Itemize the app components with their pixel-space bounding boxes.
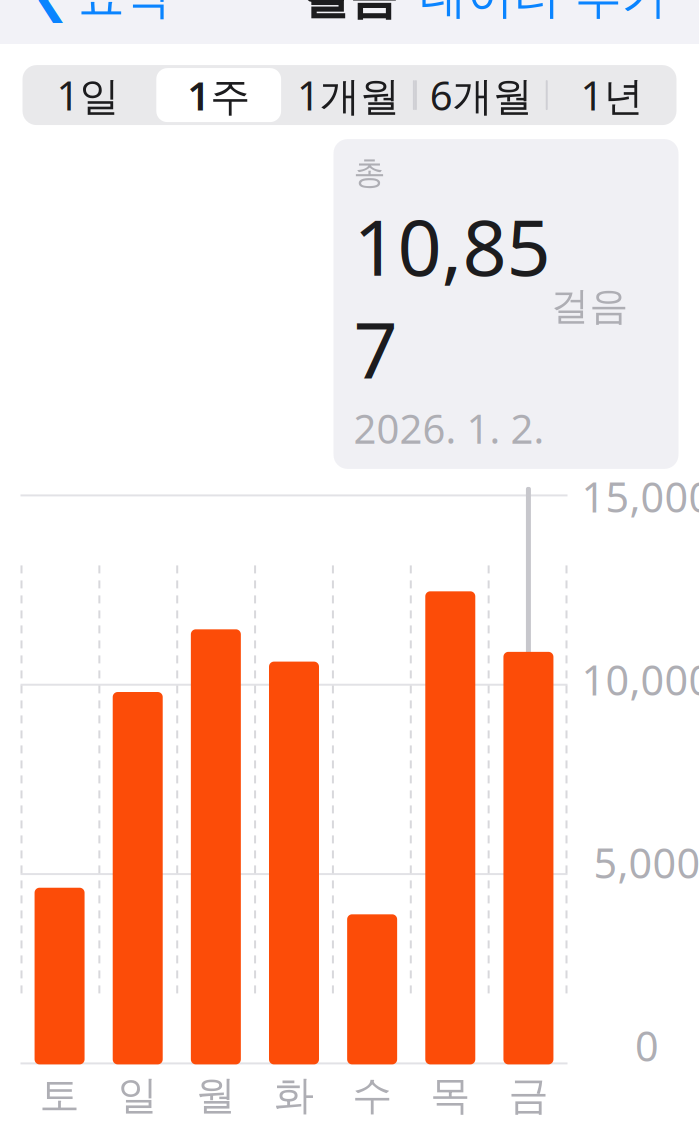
staticText: 목 [430, 1071, 470, 1120]
staticText: 1일 [56, 68, 119, 122]
staticText: 6개월 [430, 68, 533, 122]
staticText: 1년 [581, 68, 644, 122]
button[interactable]: 1일 [22, 65, 153, 125]
staticText: 걸음 [550, 282, 628, 330]
staticText: 10,857 [353, 194, 550, 400]
button[interactable]: 6개월 [415, 65, 546, 125]
staticText: 15,000 [581, 469, 699, 524]
staticText: 토 [40, 1071, 80, 1120]
staticText: 데이터 추가 [420, 0, 669, 25]
button[interactable]: 1주 [153, 65, 284, 125]
staticText: 2026. 1. 2. [353, 402, 544, 455]
staticText: 일 [118, 1071, 158, 1120]
staticText: 화 [274, 1071, 314, 1120]
staticText: 금 [508, 1071, 548, 1120]
staticText: 0 [635, 1018, 659, 1073]
button[interactable]: 데이터 추가 [414, 0, 675, 31]
button[interactable]: 1개월 [284, 65, 415, 125]
button[interactable]: 1년 [546, 65, 676, 125]
staticText: 총 [353, 153, 385, 192]
staticText: ❮ [32, 0, 70, 22]
staticText: 수 [352, 1071, 392, 1120]
staticText: 5,000 [593, 835, 699, 890]
staticText: 요약 [78, 0, 172, 25]
staticText: 월 [196, 1071, 236, 1120]
staticText: 10,000 [581, 652, 699, 707]
staticText: 1주 [187, 68, 250, 122]
staticText: 1개월 [297, 68, 400, 122]
staticText: 걸음 [301, 0, 397, 26]
button[interactable]: ❮ [24, 0, 180, 31]
